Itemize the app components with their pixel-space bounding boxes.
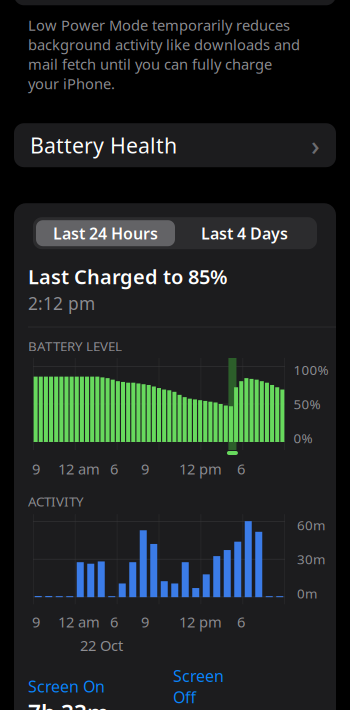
staticText: Battery Health — [30, 131, 177, 159]
staticText: 60m — [297, 516, 325, 534]
staticText: 9 — [141, 459, 149, 478]
button[interactable]: Last 24 Hours — [36, 220, 175, 246]
staticText: › — [311, 127, 320, 163]
button[interactable]: Last 4 Days — [175, 220, 314, 246]
staticText: Last 4 Days — [201, 223, 288, 244]
staticText: Last 24 Hours — [53, 223, 158, 244]
staticText: 6 — [110, 612, 118, 632]
staticText: 50% — [293, 395, 320, 413]
staticText: 12 pm — [179, 459, 222, 478]
staticText: 6 — [110, 459, 118, 478]
staticText: 9 — [32, 459, 40, 478]
staticText: Screen Off — [173, 665, 224, 708]
button[interactable]: Low Power Mode — [0, 0, 350, 5]
staticText: 0m — [297, 584, 317, 602]
staticText: 12 am — [58, 612, 100, 632]
staticText: 30m — [297, 550, 325, 568]
staticText: 9 — [141, 612, 149, 632]
button[interactable]: Battery Health — [0, 93, 350, 167]
staticText: 12 pm — [179, 612, 222, 632]
staticText: Last Charged to 85% — [28, 263, 228, 290]
staticText: 6 — [237, 459, 245, 478]
staticText: Low Power Mode temporarily reduces backg… — [28, 15, 300, 93]
staticText: 12 am — [58, 459, 100, 478]
staticText: ACTIVITY — [28, 492, 84, 510]
staticText: BATTERY LEVEL — [28, 337, 122, 355]
staticText: 0% — [293, 429, 312, 447]
staticText: 2:12 pm — [28, 292, 95, 315]
staticText: 7h 33m — [28, 698, 109, 710]
staticText: Screen On — [28, 676, 105, 697]
staticText: 22 Oct — [80, 636, 123, 655]
staticText: 6 — [237, 612, 245, 632]
staticText: 9 — [32, 612, 40, 632]
staticText: 100% — [293, 361, 328, 379]
